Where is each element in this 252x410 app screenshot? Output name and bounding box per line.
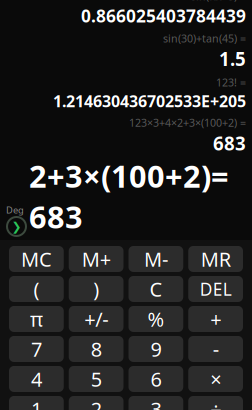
button[interactable]: 2 (69, 396, 124, 410)
button[interactable]: 1 (9, 396, 64, 410)
staticText: MR (201, 246, 231, 272)
staticText: 4 (31, 366, 42, 392)
staticText: DEL (200, 277, 232, 300)
staticText: ÷ (210, 396, 221, 410)
staticText: 1.5 (219, 46, 246, 71)
staticText: 9 (150, 336, 161, 362)
staticText: Deg (6, 204, 24, 216)
staticText: 123! = (216, 75, 246, 89)
button[interactable]: 7 (9, 336, 64, 362)
button[interactable]: π (9, 306, 64, 332)
button[interactable]: - (188, 336, 243, 362)
staticText: 3 (150, 396, 161, 410)
staticText: 2+3×(100+2)=683 (29, 155, 229, 237)
staticText: % (147, 306, 164, 332)
staticText: π (30, 306, 43, 332)
button[interactable]: % (128, 306, 183, 332)
button[interactable]: DEL (188, 276, 243, 302)
staticText: 7 (31, 336, 42, 362)
button[interactable]: 9 (128, 336, 183, 362)
button[interactable]: ) (69, 276, 124, 302)
staticText: +/- (84, 306, 108, 332)
staticText: × (210, 366, 221, 392)
staticText: 123×3+4×2+3×(100+2) = (129, 116, 246, 130)
staticText: ❯ (11, 220, 21, 233)
button[interactable]: Scroll expression left (6, 216, 27, 237)
button[interactable]: MR (188, 246, 243, 272)
staticText: 5 (91, 366, 102, 392)
staticText: MC (21, 246, 52, 272)
button[interactable]: M+ (69, 246, 124, 272)
staticText: M- (144, 246, 168, 272)
staticText: 2 (91, 396, 102, 410)
staticText: 0.866025403784439 (81, 4, 246, 27)
button[interactable]: 5 (69, 366, 124, 392)
staticText: 683 (213, 131, 246, 155)
staticText: 1 (31, 396, 42, 410)
button[interactable]: M- (128, 246, 183, 272)
staticText: ( (33, 276, 39, 302)
staticText: 1.214630436702533E+205 (53, 90, 246, 111)
button[interactable]: × (188, 366, 243, 392)
button[interactable]: + (188, 306, 243, 332)
button[interactable]: +/- (69, 306, 124, 332)
button[interactable]: MC (9, 246, 64, 272)
staticText: C (149, 276, 162, 302)
staticText: sin(30)+tan(45) = (163, 31, 246, 45)
button[interactable]: ÷ (188, 396, 243, 410)
staticText: + (210, 306, 221, 332)
button[interactable]: ( (9, 276, 64, 302)
staticText: sin(πx÷3) = (191, 0, 246, 3)
staticText: 8 (91, 336, 102, 362)
staticText: - (213, 336, 219, 362)
button[interactable]: 6 (128, 366, 183, 392)
button[interactable]: 4 (9, 366, 64, 392)
button[interactable]: C (128, 276, 183, 302)
staticText: 6 (150, 366, 161, 392)
button[interactable]: 3 (128, 396, 183, 410)
staticText: M+ (82, 246, 111, 272)
staticText: ) (93, 276, 99, 302)
button[interactable]: 8 (69, 336, 124, 362)
